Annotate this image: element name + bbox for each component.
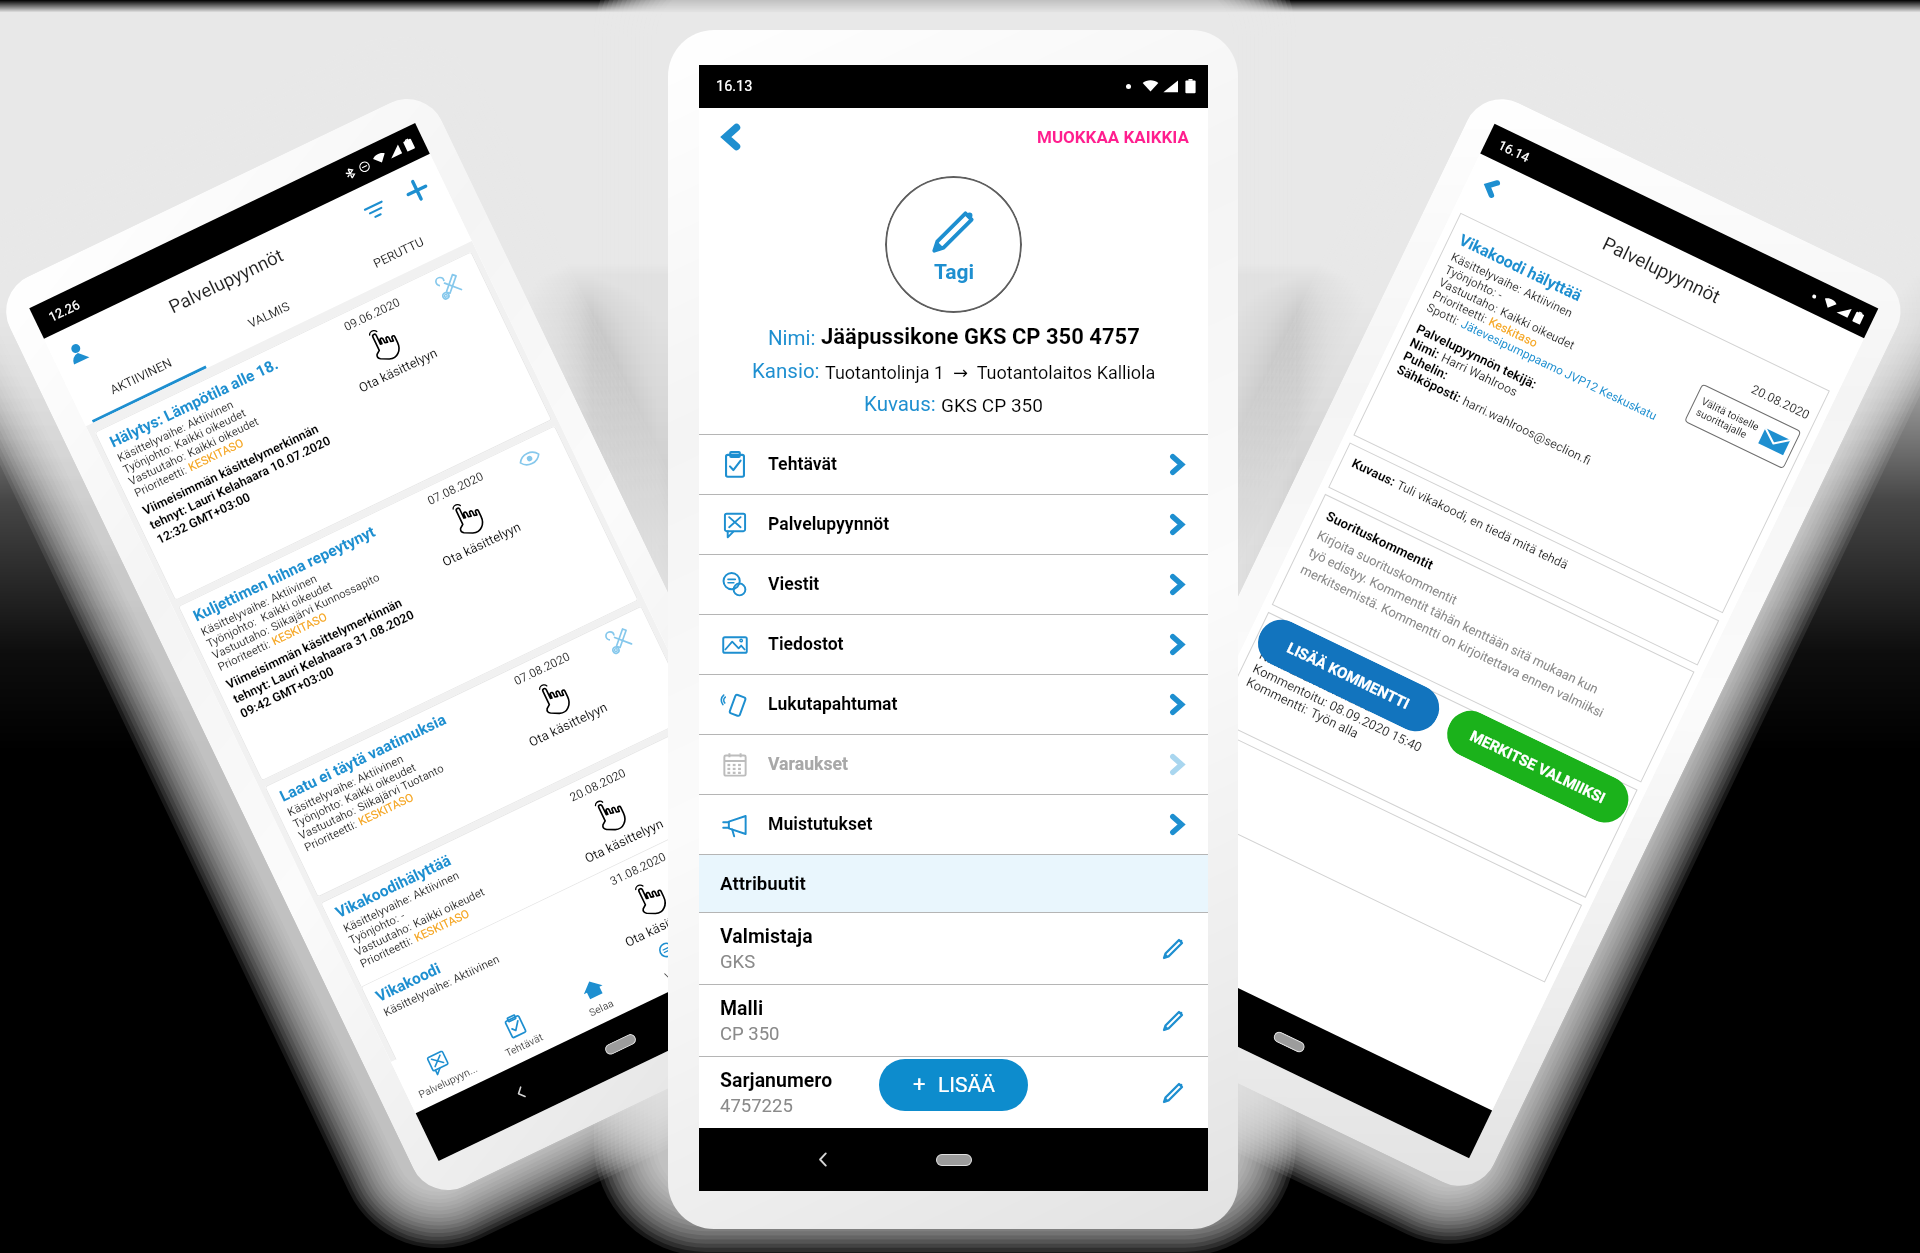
staticText: Siikajärvi Kunnossapito <box>268 570 382 633</box>
button[interactable]: + <box>879 1059 1028 1111</box>
staticText: Vastuutaho: <box>210 622 274 661</box>
button[interactable]: Hälytys: Lämpötila alle 18. <box>94 251 552 601</box>
staticText: Nimi: <box>768 326 821 350</box>
staticText: - <box>398 908 407 922</box>
button[interactable]: Malli <box>699 985 1208 1056</box>
staticText: Palvelupyynnön tekijä: <box>1414 321 1539 392</box>
staticText: GKS CP 350 <box>941 394 1043 416</box>
button[interactable]: AKTIIVINEN <box>67 326 214 426</box>
staticText: Suorituskommentit <box>1324 508 1436 573</box>
staticText: Tagi <box>934 260 975 285</box>
staticText: Keskitaso <box>1486 315 1540 350</box>
button[interactable]: Viestit <box>622 914 724 1002</box>
staticText: Lauri Kelahaara <box>1287 662 1375 715</box>
button[interactable]: Filter <box>359 194 392 227</box>
staticText: Kommentoitu: <box>1250 661 1333 711</box>
button[interactable]: Sarjanumero <box>699 1057 1208 1128</box>
button[interactable]: MERKITSE VALMIIKSI <box>1439 703 1636 830</box>
button[interactable]: MUOKKAA KAIKKIA <box>1037 127 1189 147</box>
staticText: KESKITASO <box>186 435 246 473</box>
staticText: Spotti: <box>1424 300 1465 329</box>
staticText: CP 350 <box>720 1023 780 1045</box>
staticText: Prioriteetti: <box>302 816 362 853</box>
staticText: Aktiivinen <box>410 868 461 901</box>
button[interactable]: Add <box>399 172 435 208</box>
button[interactable]: Tiedostot <box>699 615 1208 674</box>
staticText: Hälytys: Lämpötila alle 18. <box>107 355 281 451</box>
staticText: Harri Wahlroos <box>1439 350 1520 399</box>
staticText: Varaukset <box>768 754 1165 775</box>
staticText: Vastuutaho: <box>296 802 361 842</box>
staticText: Työnjohto: <box>347 910 404 946</box>
button[interactable]: Tagi <box>885 176 1022 313</box>
staticText: Kaikki oikeudet <box>172 406 248 451</box>
staticText: Prioriteetti: <box>132 461 192 499</box>
staticText: Lisää <box>742 922 771 944</box>
staticText: Työnjohto: <box>1443 263 1502 301</box>
button[interactable]: VALMIS <box>195 264 343 365</box>
staticText: Työn alla <box>1308 705 1361 741</box>
button[interactable]: Muistutukset <box>699 795 1208 854</box>
button[interactable]: Vikakoodi <box>360 806 791 1098</box>
staticText: Malli <box>720 997 764 1020</box>
button[interactable]: Profile <box>60 335 96 371</box>
button[interactable]: Viestit <box>699 555 1208 614</box>
staticText: Palvelupyyn... <box>416 1062 479 1100</box>
staticText: Käsittelyvaihe: <box>381 973 456 1018</box>
button[interactable]: Lukutapahtumat <box>699 675 1208 734</box>
staticText: Ota käsittelyyn <box>622 899 706 950</box>
button[interactable]: Back <box>716 121 748 153</box>
staticText: Kirjoita suorituskommentit työ edistyy. … <box>1298 527 1623 720</box>
staticText: Kuvaus: <box>1349 455 1401 491</box>
button[interactable]: Lisää <box>699 877 801 965</box>
staticText: Kaikki oikeudet <box>185 414 261 459</box>
staticText: 20.08.2020 <box>568 765 629 804</box>
staticText: Muistutukset <box>768 814 1165 835</box>
staticText: 16.14 <box>1496 137 1532 165</box>
staticText: Kaikki oikeudet <box>342 760 418 805</box>
button[interactable]: Valmistaja <box>699 913 1208 984</box>
staticText: MUOKKAA KAIKKIA <box>1037 127 1189 147</box>
staticText: Työnjohto: <box>121 439 178 476</box>
button[interactable]: Vikakoodihälyttää <box>320 722 755 1023</box>
button[interactable]: LISÄÄ KOMMENTTI <box>1250 612 1447 739</box>
staticText: 31.08.2020 <box>608 849 669 888</box>
button[interactable]: Varaukset <box>699 735 1208 794</box>
button[interactable]: Tehtävät <box>699 435 1208 494</box>
staticText: Aktiivinen <box>1522 285 1575 321</box>
staticText: Palvelupyynnöt <box>1599 232 1724 307</box>
staticText: Kuvaus: <box>864 392 941 416</box>
staticText: PERUTTU <box>371 234 426 271</box>
staticText: Kansio: <box>752 359 825 383</box>
staticText: harri.wahlroos@seclion.fi <box>1460 393 1594 468</box>
staticText: Tehtävät <box>768 454 1165 475</box>
staticText: Jätevesipumppaamo JVP12 Keskuskatu <box>1459 317 1659 423</box>
staticText: Prioriteetti: <box>215 635 275 673</box>
staticText: Käsittelyvaihe: <box>1449 250 1528 298</box>
staticText: Tehtävät <box>503 1030 545 1059</box>
button[interactable]: Tehtävät <box>468 988 569 1076</box>
staticText: Välitä toiselle suorittajalle <box>1694 395 1761 445</box>
staticText: Kuljettimen hihna repeytynyt <box>190 523 378 625</box>
staticText: Aktiivinen <box>354 752 405 785</box>
button[interactable]: Palvelupyyn... <box>391 1025 492 1113</box>
button[interactable]: PERUTTU <box>324 202 472 303</box>
button[interactable]: Laatu ei täytä vaatimuksia <box>264 606 694 897</box>
button[interactable]: Välitä toiselle suorittajalle <box>1684 384 1801 469</box>
staticText: Nimi: <box>1407 335 1445 363</box>
staticText: GKS <box>720 951 756 973</box>
staticText: Sähköposti: <box>1394 362 1467 407</box>
staticText: Vikakoodi hälyttää <box>1456 230 1585 305</box>
staticText: Kaikki oikeudet <box>258 578 334 624</box>
staticText: Viestit <box>768 574 1165 595</box>
staticText: Aktiivinen <box>451 952 501 985</box>
staticText: 07.08.2020 <box>425 469 486 508</box>
button[interactable]: Palvelupyynnöt <box>699 495 1208 554</box>
button[interactable]: Selaa <box>544 951 646 1040</box>
button[interactable]: Kuljettimen hihna repeytynyt <box>178 425 639 781</box>
staticText: Palvelupyynnöt <box>768 514 1165 535</box>
staticText: Viimeisimmän käsittelymerkinnän tehnyt: … <box>140 418 340 547</box>
button[interactable]: Back <box>1475 172 1507 204</box>
staticText: Siikajärvi Tuotanto <box>355 761 446 814</box>
staticText: 12.26 <box>46 297 82 325</box>
